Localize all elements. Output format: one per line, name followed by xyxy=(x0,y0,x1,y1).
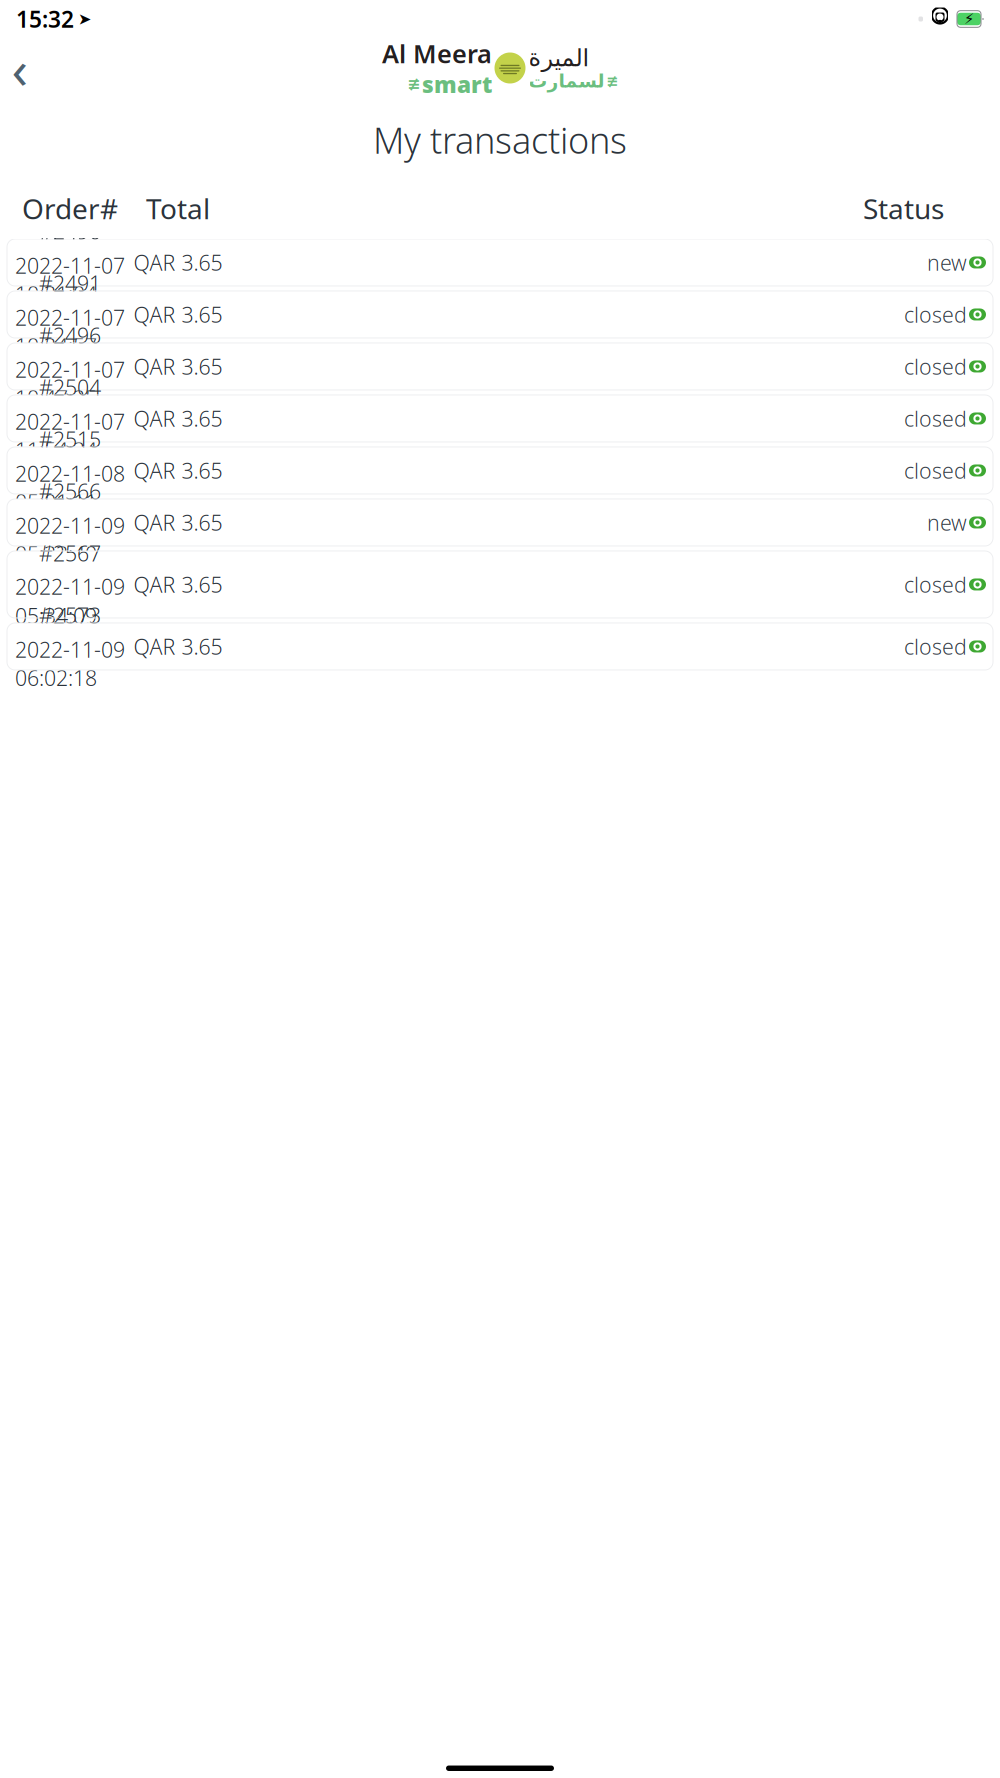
staticText: #2491 xyxy=(39,269,101,297)
staticText: #2567 xyxy=(39,539,101,567)
staticText: closed xyxy=(904,404,967,433)
staticText: 2022-11-09 xyxy=(15,572,125,601)
button[interactable]: #2496 xyxy=(7,343,993,390)
staticText: Status xyxy=(863,190,944,227)
staticText: Al Meera xyxy=(382,37,492,70)
button[interactable]: #2490 xyxy=(7,239,993,286)
staticText: 2022-11-07 10:34:57 xyxy=(15,303,125,360)
staticText: 2022-11-08 05:01:11 xyxy=(15,459,125,516)
staticText: الميرة xyxy=(528,44,589,71)
staticText: My transactions xyxy=(373,116,627,164)
staticText: QAR 3.65 xyxy=(133,456,222,485)
staticText: #2504 xyxy=(39,373,101,401)
staticText: closed xyxy=(904,456,967,485)
staticText: QAR 3.65 xyxy=(133,352,222,381)
staticText: #2573 xyxy=(39,601,101,629)
staticText: QAR 3.65 xyxy=(133,632,222,661)
staticText: Total xyxy=(146,190,210,227)
staticText: 15:32 xyxy=(16,4,74,34)
staticText: #2566 xyxy=(39,477,101,505)
staticText: 05:34:09 xyxy=(15,602,97,630)
staticText: ⚡︎ xyxy=(964,11,974,27)
button[interactable]: #2566 xyxy=(7,499,993,546)
staticText: ≢ xyxy=(606,73,618,89)
staticText: QAR 3.65 xyxy=(133,404,222,433)
staticText: ‹ xyxy=(11,33,28,103)
staticText: closed xyxy=(904,300,967,329)
staticText: #2490 xyxy=(39,217,101,245)
staticText: new xyxy=(927,508,967,537)
staticText: QAR 3.65 xyxy=(133,508,222,537)
staticText: #2496 xyxy=(39,321,101,349)
staticText: 2022-11-09 06:02:18 xyxy=(15,635,125,692)
staticText: closed xyxy=(904,570,967,599)
button[interactable]: #2573 xyxy=(7,623,993,670)
staticText: smart xyxy=(422,69,492,99)
staticText: QAR 3.65 xyxy=(133,300,222,329)
staticText: new xyxy=(927,248,967,277)
button[interactable]: #2567 xyxy=(7,551,993,618)
button[interactable]: #2515 xyxy=(7,447,993,494)
staticText: QAR 3.65 xyxy=(133,248,222,277)
staticText: closed xyxy=(904,352,967,381)
staticText: لسمارت xyxy=(528,70,604,92)
staticText: 2022-11-07 10:31:04 xyxy=(15,251,125,308)
staticText: QAR 3.65 xyxy=(133,570,222,599)
button[interactable]: #2504 xyxy=(7,395,993,442)
staticText: ≢ xyxy=(407,75,420,93)
staticText: ➤ xyxy=(78,10,91,28)
staticText: 2022-11-07 11:54:24 xyxy=(15,407,125,464)
button[interactable]: Back xyxy=(0,48,40,88)
staticText: Order# xyxy=(22,190,118,227)
button[interactable]: #2491 xyxy=(7,291,993,338)
staticText: #2515 xyxy=(39,425,101,453)
staticText: 2022-11-07 10:47:25 xyxy=(15,355,125,412)
staticText: 2022-11-09 05:33:40 xyxy=(15,511,125,568)
staticText: closed xyxy=(904,632,967,661)
